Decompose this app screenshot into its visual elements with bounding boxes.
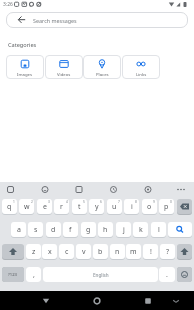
staticText: k	[139, 225, 143, 235]
button[interactable]: Links	[122, 55, 160, 79]
button[interactable]: o	[142, 199, 157, 214]
staticText: y	[95, 202, 99, 212]
button[interactable]	[138, 293, 158, 308]
button[interactable]: !	[143, 244, 158, 259]
button[interactable]: x	[42, 244, 57, 259]
button[interactable]: q	[2, 199, 17, 214]
button[interactable]: c	[59, 244, 74, 259]
staticText: 2	[31, 200, 33, 204]
staticText: z	[32, 247, 36, 257]
button[interactable]: v	[76, 244, 91, 259]
button[interactable]: h	[98, 222, 113, 237]
staticText: b	[98, 247, 103, 257]
button[interactable]: y	[89, 199, 104, 214]
staticText: Images	[17, 71, 33, 77]
button[interactable]: l	[151, 222, 166, 237]
button[interactable]	[177, 199, 192, 214]
button[interactable]: t	[72, 199, 87, 214]
staticText: Places	[96, 71, 109, 77]
staticText: 4	[66, 200, 68, 204]
button[interactable]: g	[81, 222, 96, 237]
staticText: n	[115, 247, 120, 257]
staticText: Categories	[8, 41, 37, 49]
button[interactable]: u	[107, 199, 122, 214]
staticText: a	[17, 225, 21, 235]
staticText: 3	[48, 200, 50, 204]
staticText: Links	[136, 71, 147, 77]
button[interactable]	[168, 222, 192, 237]
staticText: i	[131, 202, 133, 212]
staticText: 1	[13, 200, 15, 204]
staticText: 8	[135, 200, 137, 204]
button[interactable]	[4, 183, 17, 196]
button[interactable]: .	[159, 267, 175, 282]
button[interactable]: ?	[160, 244, 175, 259]
staticText: ?123	[8, 272, 18, 278]
button[interactable]	[36, 293, 56, 308]
button[interactable]: d	[46, 222, 61, 237]
staticText: g	[86, 225, 91, 235]
button[interactable]: a	[11, 222, 26, 237]
staticText: l	[158, 225, 160, 235]
staticText: .	[166, 270, 168, 280]
staticText: 9	[153, 200, 155, 204]
staticText: p	[164, 202, 169, 212]
staticText: 3:26	[3, 1, 13, 8]
staticText: r	[60, 202, 63, 212]
button[interactable]	[39, 183, 52, 196]
button[interactable]: j	[116, 222, 131, 237]
staticText: t	[78, 202, 81, 212]
button[interactable]	[43, 267, 158, 282]
staticText: f	[69, 225, 72, 235]
staticText: x	[48, 247, 52, 257]
staticText: v	[82, 247, 86, 257]
button[interactable]	[177, 244, 192, 259]
staticText: 0	[170, 200, 172, 204]
button[interactable]: m	[126, 244, 141, 259]
button[interactable]	[2, 244, 24, 259]
button[interactable]: r	[54, 199, 69, 214]
button[interactable]: i	[124, 199, 139, 214]
staticText: 5	[83, 200, 85, 204]
button[interactable]: Places	[83, 55, 121, 79]
button[interactable]: p	[159, 199, 174, 214]
button[interactable]	[168, 294, 184, 308]
button[interactable]: b	[93, 244, 108, 259]
staticText: q	[7, 202, 12, 212]
button[interactable]	[73, 183, 86, 196]
button[interactable]: w	[19, 199, 34, 214]
staticText: c	[65, 247, 69, 257]
staticText: w	[24, 202, 30, 212]
button[interactable]: Images	[6, 55, 44, 79]
staticText: ,	[33, 270, 35, 280]
staticText: d	[51, 225, 56, 235]
staticText: ?	[166, 247, 170, 257]
staticText: u	[112, 202, 117, 212]
button[interactable]: Videos	[45, 55, 83, 79]
button[interactable]: n	[110, 244, 125, 259]
button[interactable]	[142, 183, 155, 196]
staticText: m	[130, 247, 137, 257]
button[interactable]: ?123	[2, 267, 24, 282]
button[interactable]: k	[133, 222, 148, 237]
staticText: Search messages	[33, 17, 77, 24]
button[interactable]: s	[28, 222, 43, 237]
staticText: j	[123, 225, 125, 235]
staticText: o	[147, 202, 152, 212]
staticText: !	[150, 247, 152, 257]
button[interactable]	[177, 267, 192, 282]
button[interactable]	[87, 293, 107, 308]
button[interactable]	[107, 183, 120, 196]
button[interactable]: ,	[26, 267, 41, 282]
button[interactable]: f	[63, 222, 78, 237]
staticText: 7	[118, 200, 120, 204]
button[interactable]: Search messages	[6, 12, 188, 28]
staticText: Videos	[57, 71, 71, 77]
staticText: e	[43, 202, 47, 212]
button[interactable]: z	[26, 244, 41, 259]
button[interactable]	[175, 183, 188, 196]
staticText: h	[103, 225, 108, 235]
button[interactable]: e	[37, 199, 52, 214]
staticText: 6	[100, 200, 102, 204]
staticText: s	[34, 225, 38, 235]
